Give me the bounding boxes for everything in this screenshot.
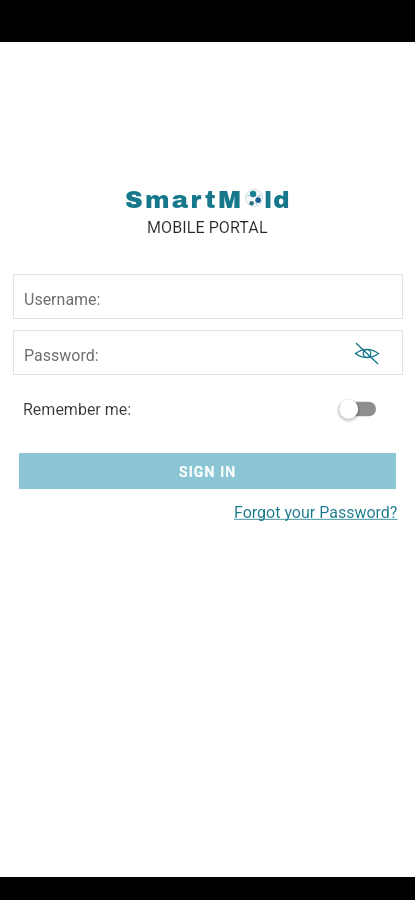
button[interactable]: Username: [13,274,403,319]
button[interactable]: Show password [354,340,380,366]
staticText: SIGN IN [179,464,237,480]
staticText: SmartM [125,186,244,213]
staticText: MOBILE PORTAL [147,218,268,237]
button[interactable]: Forgot your Password? [234,503,398,522]
button[interactable]: SIGN IN [19,453,396,489]
staticText: Username: [24,290,101,309]
button[interactable]: Password: [13,330,403,375]
staticText: Forgot your Password? [234,503,398,522]
staticText: Remember me: [23,400,132,419]
staticText: Password: [24,346,99,365]
button[interactable]: Remember me [339,396,376,422]
staticText: ld [264,186,291,213]
button[interactable]: Remember me: [0,394,415,424]
